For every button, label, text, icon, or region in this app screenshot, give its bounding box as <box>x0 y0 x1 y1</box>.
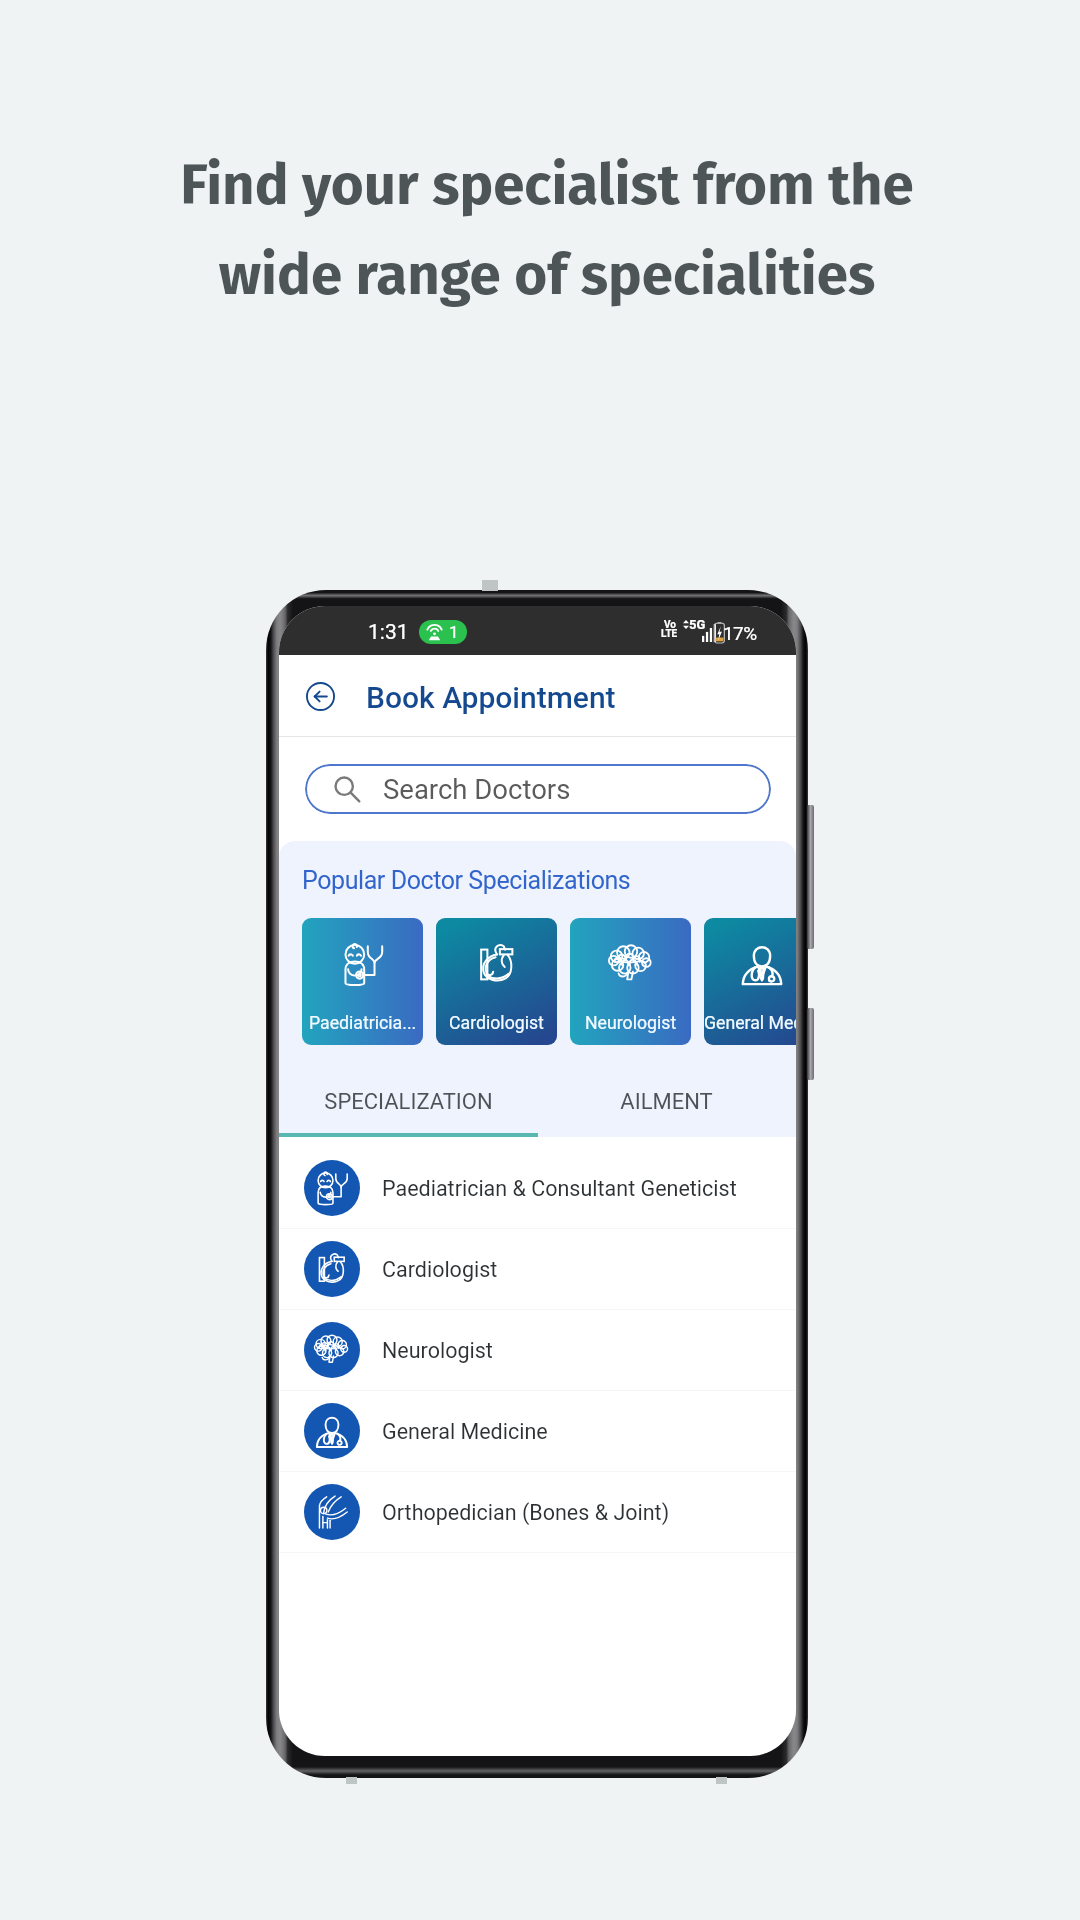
staticText: Vo <box>664 619 676 631</box>
button[interactable]: Neurologist <box>570 918 691 1045</box>
staticText: Paediatricia... <box>309 1013 417 1034</box>
button[interactable]: Neurologist <box>279 1310 796 1390</box>
button[interactable]: Cardiologist <box>279 1229 796 1309</box>
staticText: AILMENT <box>620 1089 713 1115</box>
button[interactable]: General Medicine <box>704 918 796 1045</box>
staticText: General Medicine <box>704 1013 796 1034</box>
staticText: General Medicine <box>382 1419 548 1444</box>
staticText: 17% <box>723 622 757 644</box>
staticText: Popular Doctor Specializations <box>302 866 631 895</box>
staticText: wide range of specialities <box>7 241 1080 309</box>
staticText: Neurologist <box>585 1013 677 1034</box>
staticText: Paediatrician & Consultant Geneticist <box>382 1176 737 1201</box>
button[interactable]: Search Doctors <box>305 764 771 814</box>
button[interactable]: Back <box>304 680 336 712</box>
staticText: SPECIALIZATION <box>324 1089 493 1115</box>
button[interactable]: SPECIALIZATION <box>279 1045 537 1137</box>
button[interactable]: Paediatrician & Consultant Geneticist <box>279 1148 796 1228</box>
button[interactable]: Paediatricia... <box>302 918 423 1045</box>
staticText: 1 <box>449 622 459 642</box>
staticText: Book Appointment <box>366 680 616 715</box>
button[interactable]: Orthopedician (Bones & Joint) <box>279 1472 796 1552</box>
staticText: Cardiologist <box>449 1013 544 1034</box>
staticText: 1:31 <box>368 620 409 645</box>
staticText: 5G <box>689 617 706 632</box>
button[interactable]: General Medicine <box>279 1391 796 1471</box>
button[interactable]: AILMENT <box>537 1045 796 1137</box>
staticText: Orthopedician (Bones & Joint) <box>382 1500 670 1525</box>
staticText: Find your specialist from the <box>7 151 1080 219</box>
staticText: LTE <box>661 628 678 640</box>
staticText: Neurologist <box>382 1338 493 1363</box>
staticText: Search Doctors <box>383 773 571 805</box>
staticText: Cardiologist <box>382 1257 498 1282</box>
button[interactable]: Cardiologist <box>436 918 557 1045</box>
